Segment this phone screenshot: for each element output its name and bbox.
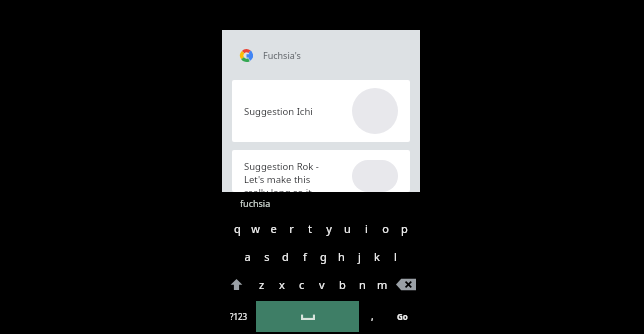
staticText: Suggestion Ichi xyxy=(244,105,313,118)
staticText: y xyxy=(326,221,332,236)
button[interactable]: y xyxy=(319,214,338,242)
button[interactable]: Go xyxy=(385,298,420,334)
button[interactable]: l xyxy=(386,242,404,270)
staticText: z xyxy=(259,277,265,292)
button[interactable]: w xyxy=(246,214,264,242)
button[interactable]: , xyxy=(359,298,385,334)
staticText: e xyxy=(270,221,277,236)
staticText: j xyxy=(358,249,361,264)
button[interactable]: i xyxy=(357,214,376,242)
staticText: c xyxy=(299,277,305,292)
button[interactable]: o xyxy=(376,214,395,242)
staticText: i xyxy=(365,221,368,236)
button[interactable]: r xyxy=(282,214,300,242)
button[interactable]: Backspace xyxy=(392,270,420,298)
button[interactable]: Fuchsia's xyxy=(222,30,420,80)
staticText: really long so it xyxy=(244,186,312,192)
staticText: k xyxy=(374,249,380,264)
staticText: u xyxy=(344,221,351,236)
staticText: p xyxy=(401,221,408,236)
button[interactable]: k xyxy=(368,242,386,270)
button[interactable]: q xyxy=(228,214,246,242)
staticText: d xyxy=(282,249,289,264)
button[interactable]: d xyxy=(276,242,295,270)
button[interactable]: fuchsia xyxy=(222,192,420,214)
staticText: o xyxy=(382,221,389,236)
staticText: m xyxy=(377,277,388,292)
button[interactable]: x xyxy=(272,270,292,298)
staticText: f xyxy=(303,249,307,264)
staticText: Suggestion Rok - xyxy=(244,160,319,173)
button[interactable]: ?123 xyxy=(222,298,256,334)
button[interactable]: Suggestion Rok - xyxy=(232,150,410,192)
button[interactable]: Space xyxy=(256,301,359,332)
staticText: b xyxy=(339,277,346,292)
button[interactable]: h xyxy=(332,242,350,270)
staticText: fuchsia xyxy=(240,197,271,209)
staticText: s xyxy=(264,249,270,264)
button[interactable]: e xyxy=(264,214,282,242)
staticText: ?123 xyxy=(230,311,248,322)
button[interactable]: p xyxy=(395,214,414,242)
staticText: Let's make this xyxy=(244,173,311,186)
staticText: Go xyxy=(397,311,408,322)
button[interactable]: u xyxy=(338,214,357,242)
button[interactable]: j xyxy=(350,242,368,270)
staticText: h xyxy=(338,249,345,264)
button[interactable]: n xyxy=(352,270,372,298)
button[interactable]: b xyxy=(332,270,352,298)
staticText: r xyxy=(289,221,294,236)
button[interactable]: Shift xyxy=(222,270,251,298)
staticText: w xyxy=(251,221,260,236)
staticText: , xyxy=(371,309,374,323)
button[interactable]: Suggestion Ichi xyxy=(232,80,410,142)
button[interactable]: z xyxy=(251,270,272,298)
button[interactable]: a xyxy=(238,242,257,270)
staticText: l xyxy=(394,249,397,264)
staticText: q xyxy=(234,221,241,236)
button[interactable]: s xyxy=(257,242,276,270)
button[interactable]: v xyxy=(312,270,332,298)
button[interactable]: g xyxy=(314,242,332,270)
staticText: Fuchsia's xyxy=(263,49,301,61)
staticText: a xyxy=(244,249,251,264)
button[interactable]: m xyxy=(372,270,392,298)
staticText: v xyxy=(319,277,325,292)
staticText: g xyxy=(320,249,327,264)
button[interactable]: f xyxy=(295,242,314,270)
button[interactable]: t xyxy=(300,214,319,242)
staticText: x xyxy=(279,277,285,292)
staticText: t xyxy=(308,221,312,236)
staticText: n xyxy=(359,277,366,292)
button[interactable]: c xyxy=(292,270,312,298)
